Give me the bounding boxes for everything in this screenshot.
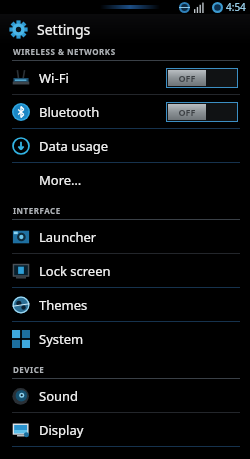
staticText: System <box>39 330 238 348</box>
button[interactable]: Display <box>0 413 250 446</box>
staticText: Wi-Fi <box>39 69 166 87</box>
button[interactable]: Data usage <box>0 129 250 162</box>
button[interactable]: Bluetooth <box>0 95 250 128</box>
button[interactable]: Wi-Fi <box>0 61 250 94</box>
button[interactable]: System <box>0 322 250 355</box>
other: Settings <box>9 20 28 39</box>
button[interactable]: Lock screen <box>0 254 250 287</box>
staticText: Bluetooth <box>39 103 166 121</box>
staticText: Sound <box>39 387 238 405</box>
button[interactable]: Off <box>166 102 238 122</box>
button[interactable]: Launcher <box>0 220 250 253</box>
staticText: OFF <box>178 72 196 84</box>
staticText: Settings <box>37 20 91 39</box>
staticText: DEVICE <box>13 364 45 375</box>
staticText: INTERFACE <box>13 205 61 216</box>
staticText: OFF <box>178 106 196 118</box>
staticText: WIRELESS & NETWORKS <box>13 46 116 57</box>
button[interactable]: Off <box>166 68 238 88</box>
button[interactable]: Themes <box>0 288 250 321</box>
button[interactable]: Sound <box>0 379 250 412</box>
staticText: Data usage <box>39 137 238 155</box>
button[interactable]: More… <box>0 163 250 196</box>
staticText: Display <box>39 421 238 439</box>
staticText: Launcher <box>39 228 238 246</box>
staticText: 4:54 <box>226 0 246 14</box>
staticText: Lock screen <box>39 262 238 280</box>
staticText: Themes <box>39 296 238 314</box>
staticText: More… <box>39 171 238 189</box>
